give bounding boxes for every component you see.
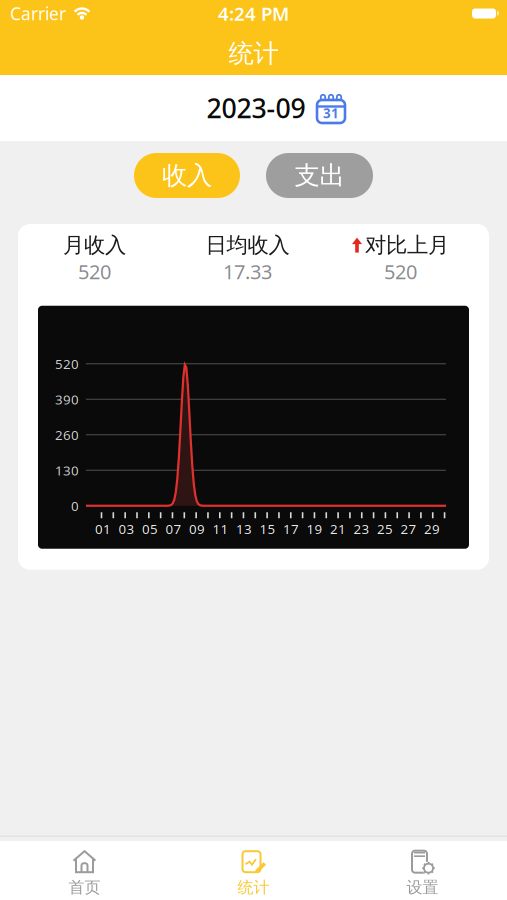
- staticText: 130: [55, 461, 79, 479]
- staticText: 首页: [68, 878, 100, 897]
- staticText: 19: [306, 520, 322, 538]
- staticText: 31: [323, 104, 339, 122]
- staticText: 23: [353, 520, 369, 538]
- staticText: Carrier: [10, 2, 66, 25]
- staticText: 15: [259, 520, 275, 538]
- button[interactable]: 收入: [134, 153, 240, 198]
- staticText: 01: [95, 520, 111, 538]
- staticText: 17.33: [223, 258, 272, 285]
- staticText: 日均收入: [205, 232, 289, 258]
- button[interactable]: 支出: [266, 153, 373, 198]
- staticText: 13: [236, 520, 252, 538]
- staticText: 月收入: [63, 232, 126, 258]
- staticText: 25: [377, 520, 393, 538]
- button[interactable]: 设置: [338, 850, 507, 897]
- staticText: 390: [55, 390, 79, 408]
- staticText: 27: [400, 520, 416, 538]
- staticText: 07: [165, 520, 181, 538]
- button[interactable]: 首页: [0, 850, 169, 897]
- staticText: 260: [55, 426, 79, 444]
- staticText: 2023-09: [206, 90, 305, 126]
- staticText: 统计: [228, 38, 278, 69]
- staticText: 统计: [237, 878, 269, 897]
- staticText: 4:24 PM: [218, 1, 289, 26]
- staticText: 520: [78, 258, 111, 285]
- staticText: 0: [71, 497, 79, 515]
- staticText: 21: [330, 520, 346, 538]
- staticText: 29: [424, 520, 440, 538]
- button[interactable]: 统计: [169, 850, 338, 897]
- staticText: 05: [142, 520, 158, 538]
- staticText: 17: [283, 520, 299, 538]
- staticText: 520: [384, 258, 417, 285]
- staticText: 设置: [406, 878, 438, 897]
- staticText: 520: [55, 355, 79, 373]
- staticText: 03: [118, 520, 134, 538]
- staticText: 对比上月: [365, 232, 449, 258]
- staticText: 支出: [294, 160, 344, 191]
- staticText: 09: [189, 520, 205, 538]
- staticText: 11: [212, 520, 228, 538]
- button[interactable]: 选择月份: [315, 93, 346, 123]
- staticText: 收入: [162, 160, 212, 191]
